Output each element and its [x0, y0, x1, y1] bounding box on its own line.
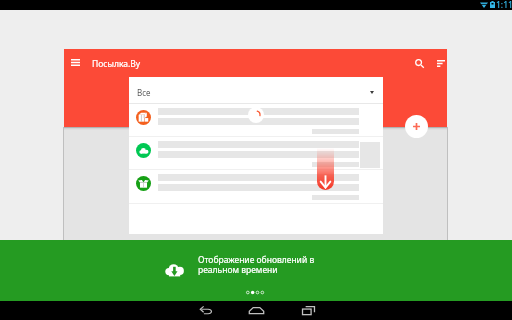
- button[interactable]: Back: [193, 301, 220, 320]
- staticText: Отображение обновлений в реальном времен…: [198, 254, 315, 275]
- button[interactable]: [129, 137, 383, 169]
- button[interactable]: Sort and filter: [432, 54, 450, 72]
- button[interactable]: Home: [243, 301, 270, 320]
- button[interactable]: Все: [129, 77, 383, 103]
- button[interactable]: Search: [410, 54, 428, 72]
- button[interactable]: Recent apps: [295, 301, 322, 320]
- staticText: Посылка.Ву: [92, 58, 141, 70]
- button[interactable]: Navigation menu: [65, 52, 86, 73]
- staticText: 1:11: [496, 0, 512, 9]
- button[interactable]: [129, 170, 383, 202]
- button[interactable]: Add package: [405, 115, 428, 138]
- staticText: Все: [137, 87, 151, 98]
- button[interactable]: [129, 104, 383, 136]
